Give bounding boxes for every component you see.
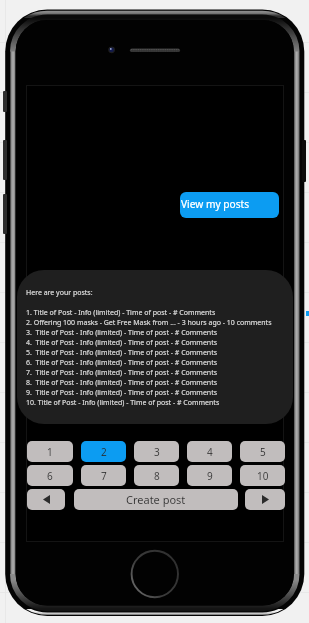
staticText: 9 [207,469,213,483]
staticText: 8 [154,469,160,483]
button[interactable]: Create post [74,489,238,510]
staticText: 7 [101,469,107,483]
button[interactable]: Next page [245,489,285,510]
staticText: 5. Title of Post - Info (limited) - Time… [26,348,218,358]
staticText: 4. Title of Post - Info (limited) - Time… [26,338,218,348]
staticText: 10 [257,469,269,483]
button[interactable]: 10 [240,465,285,486]
staticText: 3 [154,445,160,459]
staticText: 2. Offering 100 masks - Get Free Mask fr… [26,318,272,328]
button[interactable]: 5 [240,441,285,462]
staticText: Create post [126,492,186,507]
staticText: 10. Title of Post - Info (limited) - Tim… [26,398,220,408]
button[interactable]: View my posts [180,192,279,218]
staticText: 9. Title of Post - Info (limited) - Time… [26,388,218,398]
staticText: 6 [47,469,53,483]
staticText: 1 [47,445,53,459]
staticText: 3. Title of Post - Info (limited) - Time… [26,328,218,338]
button[interactable]: 7 [81,465,126,486]
staticText: 5 [260,445,266,459]
staticText: 6. Title of Post - Info (limited) - Time… [26,358,218,368]
button[interactable]: 6 [27,465,73,486]
button[interactable]: 8 [134,465,179,486]
staticText: 1. Title of Post - Info (limited) - Time… [26,308,216,318]
staticText: 2 [101,445,107,459]
button[interactable]: 9 [187,465,232,486]
button[interactable]: 4 [187,441,232,462]
button[interactable]: 2 [81,441,126,462]
staticText: Here are your posts: [26,288,93,298]
button[interactable]: 3 [134,441,179,462]
button[interactable]: 1 [27,441,73,462]
staticText: 8. Title of Post - Info (limited) - Time… [26,378,218,388]
staticText: 4 [207,445,213,459]
button[interactable]: Previous page [27,489,65,510]
staticText: 7. Title of Post - Info (limited) - Time… [26,368,218,378]
staticText: View my posts [181,197,250,211]
